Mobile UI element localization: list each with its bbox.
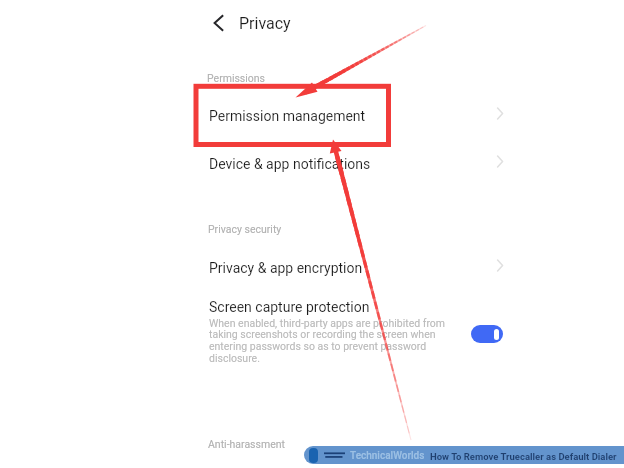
staticText: Device & app notifications: [209, 156, 371, 172]
staticText: Privacy security: [208, 223, 282, 235]
button[interactable]: Screen capture protection toggle: [471, 325, 503, 343]
staticText: Anti-harassment: [208, 438, 285, 450]
staticText: Permission management: [209, 108, 366, 124]
button[interactable]: TechnicalWorlds: [304, 446, 624, 464]
button[interactable]: Permission management: [192, 98, 512, 134]
staticText: TechnicalWorlds: [350, 450, 425, 462]
staticText: How To Remove Truecaller as Default Dial…: [430, 451, 617, 462]
staticText: Screen capture protection: [209, 299, 370, 315]
staticText: Permissions: [207, 72, 266, 84]
button[interactable]: Device & app notifications: [192, 146, 512, 182]
staticText: When enabled, third-party apps are prohi…: [209, 317, 452, 365]
staticText: Privacy & app encryption: [209, 260, 363, 276]
button[interactable]: Back: [208, 10, 291, 36]
staticText: Privacy: [239, 14, 291, 33]
button[interactable]: Privacy & app encryption: [192, 250, 512, 286]
button[interactable]: Screen capture protection: [192, 297, 512, 371]
